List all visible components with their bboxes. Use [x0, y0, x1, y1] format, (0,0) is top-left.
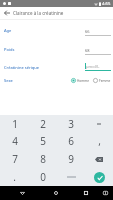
button[interactable]: Home	[49, 186, 63, 200]
button[interactable]: 8	[29, 150, 57, 168]
button[interactable]: Done	[85, 168, 113, 186]
button[interactable]: Backspace	[85, 150, 113, 168]
button[interactable]: ,	[85, 132, 113, 150]
button[interactable]: Space	[57, 168, 85, 186]
button[interactable]: Créatinine sérique	[4, 65, 40, 70]
staticText: 4:55	[102, 1, 111, 7]
staticText: 0	[40, 170, 46, 184]
staticText: 1	[12, 117, 18, 131]
staticText: 66	[85, 29, 90, 34]
button[interactable]: Switch keyboard	[98, 186, 112, 200]
button[interactable]: .	[0, 168, 29, 186]
staticText: 9	[68, 152, 74, 166]
button[interactable]: Poids	[4, 47, 15, 52]
staticText: 68	[85, 48, 90, 53]
staticText: 4	[12, 134, 18, 148]
button[interactable]: 3	[57, 115, 85, 132]
button[interactable]: 9	[57, 150, 85, 168]
button[interactable]: 4	[0, 132, 29, 150]
button[interactable]: Age	[4, 28, 12, 33]
staticText: Age	[4, 28, 12, 33]
staticText: 6	[68, 134, 74, 148]
button[interactable]: Back	[0, 7, 13, 19]
staticText: Clairance à la créatinine	[13, 10, 64, 16]
button[interactable]: 7	[0, 150, 29, 168]
button[interactable]: 1	[0, 115, 29, 132]
staticText: 5	[40, 134, 46, 148]
button[interactable]: 6	[57, 132, 85, 150]
button[interactable]: 66	[85, 29, 111, 36]
staticText: .	[13, 170, 16, 184]
button[interactable]: 5	[29, 132, 57, 150]
staticText: Sexe	[4, 78, 13, 83]
staticText: ,	[98, 134, 101, 148]
staticText: 7	[12, 152, 18, 166]
button[interactable]: Minus	[85, 115, 113, 132]
staticText: 8	[40, 152, 46, 166]
staticText: Poids	[4, 47, 15, 52]
button[interactable]: Recent apps	[79, 186, 93, 200]
button[interactable]: 0	[29, 168, 57, 186]
staticText: µmol/L	[86, 64, 100, 69]
staticText: Homme	[77, 79, 90, 83]
button[interactable]: 2	[29, 115, 57, 132]
staticText: 2	[40, 117, 46, 131]
button[interactable]: Hide keyboard	[15, 186, 29, 200]
button[interactable]: µmol/L	[85, 63, 111, 71]
button[interactable]: 68	[85, 48, 111, 55]
staticText: 3	[68, 117, 74, 131]
button[interactable]: Homme	[71, 78, 90, 83]
staticText: Femme	[99, 79, 111, 83]
button[interactable]: Femme	[93, 78, 111, 83]
staticText: Créatinine sérique	[4, 65, 40, 70]
